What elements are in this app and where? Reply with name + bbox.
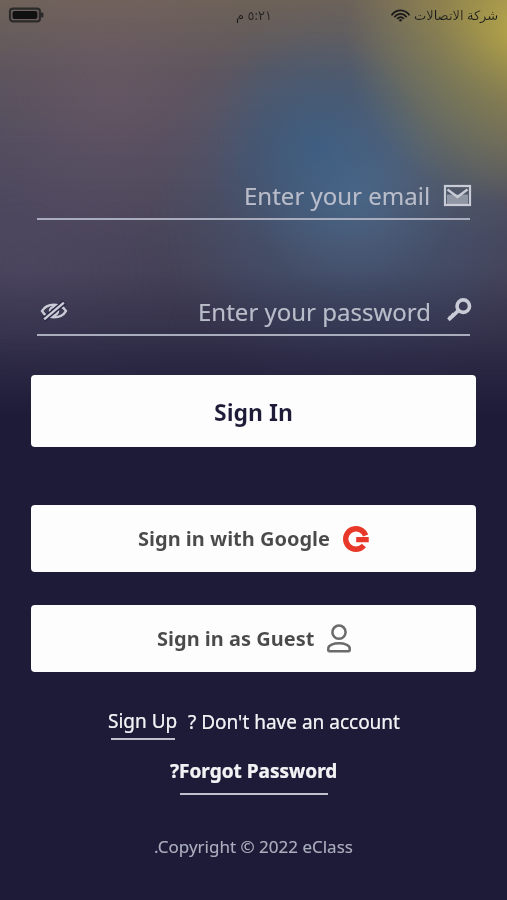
button[interactable]: Sign Up (108, 708, 178, 740)
staticText: ? Don't have an account (188, 709, 400, 735)
button[interactable]: Toggle password visibility (37, 294, 71, 328)
button[interactable]: Toggle password visibility (37, 288, 470, 334)
button[interactable]: Sign in as Guest (31, 605, 476, 672)
staticText: Sign Up (108, 708, 178, 734)
staticText: Enter your password (198, 295, 432, 328)
button[interactable]: Sign In (31, 375, 476, 447)
staticText: Sign in as Guest (157, 625, 315, 652)
other: Google (343, 526, 369, 552)
button[interactable]: ?Forgot Password (170, 758, 338, 795)
staticText: .Copyright © 2022 eClass (0, 835, 507, 858)
staticText: ?Forgot Password (170, 758, 338, 784)
staticText: Enter your email (244, 179, 431, 212)
staticText: شركة الاتصالات (414, 6, 499, 24)
button[interactable]: Enter your email (37, 172, 470, 218)
staticText: Sign in with Google (138, 525, 331, 552)
staticText: Sign In (214, 396, 293, 427)
staticText: ٥:٢١ م (236, 6, 272, 24)
other: Email (445, 186, 470, 205)
button[interactable]: Sign in with Google (31, 505, 476, 572)
other: Password (446, 300, 470, 322)
